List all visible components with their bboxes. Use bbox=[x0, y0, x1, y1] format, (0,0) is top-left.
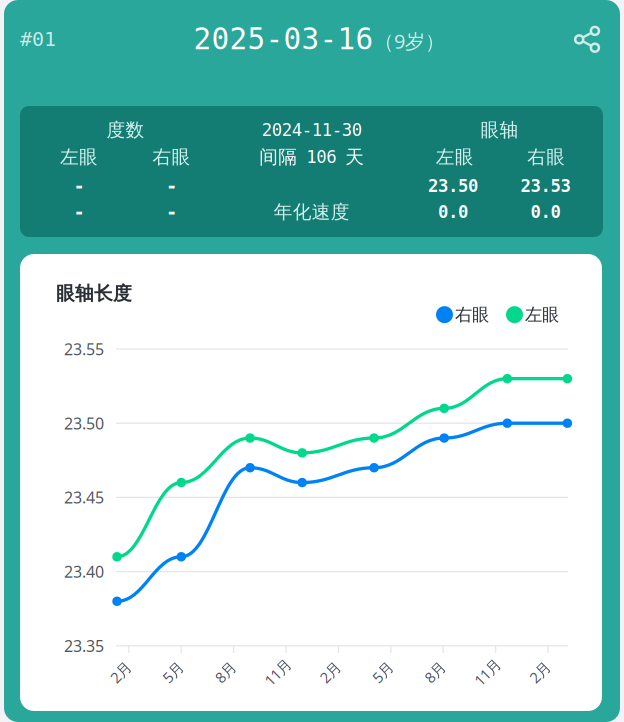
staticText: 2月 bbox=[528, 662, 551, 682]
staticText: 眼轴 bbox=[481, 118, 519, 141]
staticText: 11月 bbox=[262, 662, 293, 682]
staticText: - bbox=[166, 201, 177, 223]
staticText: 2024-11-30 bbox=[262, 120, 362, 140]
staticText: 右眼 bbox=[527, 145, 565, 168]
staticText: 106 bbox=[306, 147, 336, 167]
staticText: 23.50 bbox=[64, 413, 104, 434]
staticText: - bbox=[166, 175, 177, 197]
staticText: 2月 bbox=[319, 662, 342, 682]
staticText: 年化速度 bbox=[274, 200, 350, 223]
staticText: 23.50 bbox=[428, 176, 478, 196]
staticText: - bbox=[73, 201, 84, 223]
staticText: 左眼 bbox=[60, 145, 98, 168]
staticText: 右眼 bbox=[455, 304, 489, 325]
staticText: 间隔 bbox=[259, 145, 297, 168]
staticText: 2月 bbox=[109, 662, 132, 682]
staticText: 左眼 bbox=[436, 145, 474, 168]
staticText: 0.0 bbox=[438, 202, 468, 222]
button[interactable]: #01 bbox=[20, 19, 80, 59]
staticText: 2025-03-16 bbox=[193, 22, 373, 56]
staticText: 8月 bbox=[214, 662, 237, 682]
staticText: #01 bbox=[20, 28, 56, 50]
staticText: 右眼 bbox=[153, 145, 191, 168]
staticText: 左眼 bbox=[525, 304, 559, 325]
staticText: 23.40 bbox=[64, 561, 104, 582]
staticText: 5月 bbox=[162, 662, 185, 682]
staticText: 23.45 bbox=[64, 487, 104, 508]
staticText: 5月 bbox=[371, 662, 394, 682]
button[interactable]: Share bbox=[570, 22, 604, 56]
staticText: 23.53 bbox=[520, 176, 570, 196]
staticText: （9岁） bbox=[374, 28, 445, 54]
staticText: 眼轴长度 bbox=[56, 282, 132, 305]
staticText: 11月 bbox=[472, 662, 503, 682]
staticText: 0.0 bbox=[530, 202, 560, 222]
staticText: 8月 bbox=[424, 662, 447, 682]
staticText: - bbox=[73, 175, 84, 197]
staticText: 度数 bbox=[106, 118, 144, 141]
staticText: 天 bbox=[345, 145, 364, 168]
staticText: 23.55 bbox=[64, 338, 104, 360]
staticText: 23.35 bbox=[64, 635, 104, 656]
